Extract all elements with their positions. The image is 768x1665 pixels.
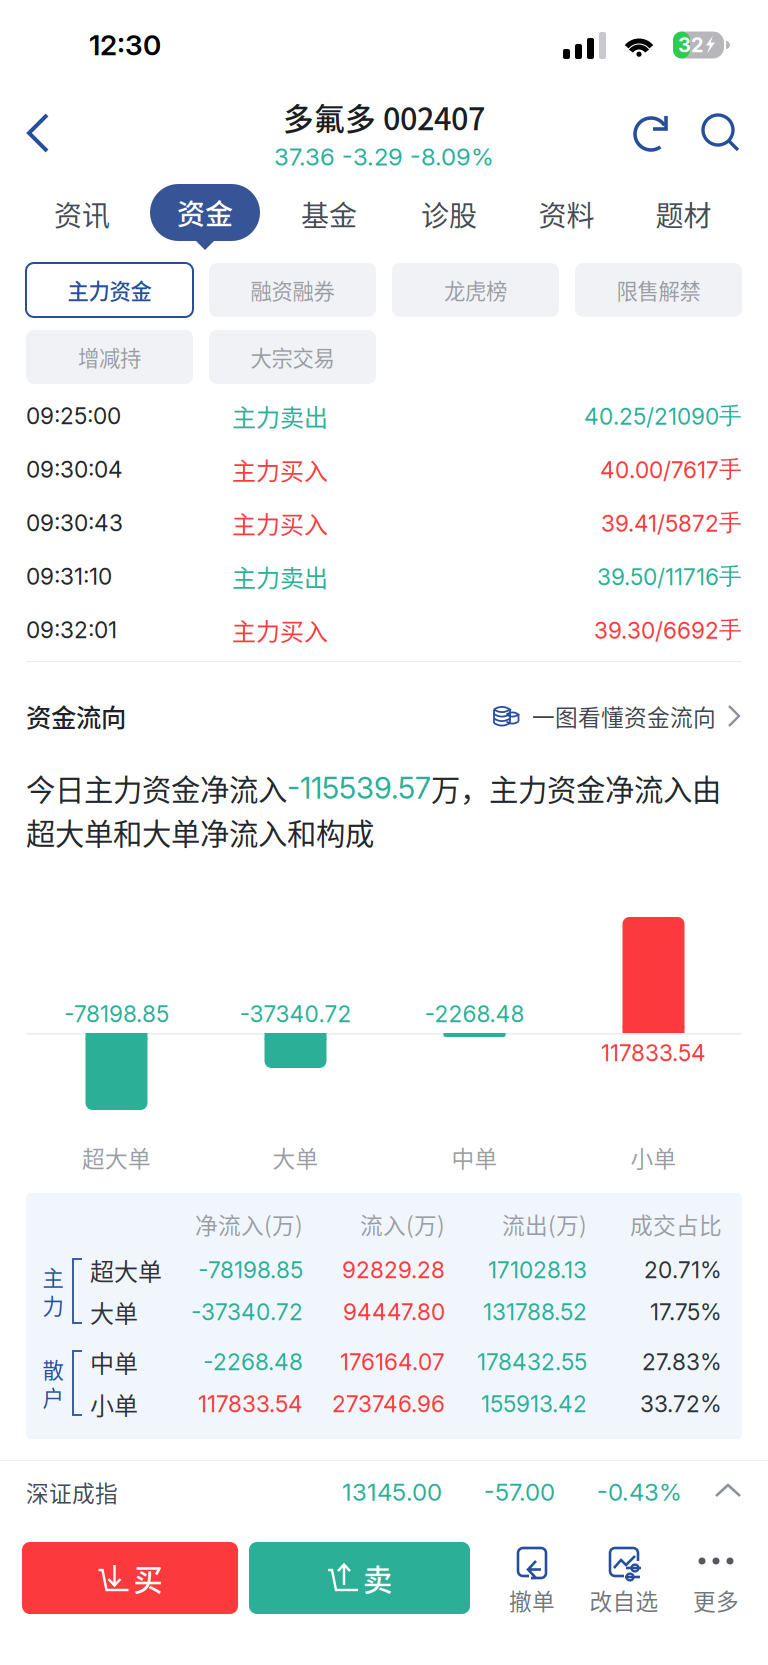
staticText: -37340.72 — [191, 1298, 303, 1326]
staticText: -0.43% — [597, 1477, 682, 1506]
staticText: 成交占比 — [630, 1208, 722, 1240]
staticText: 09:25:00 — [26, 402, 121, 430]
button[interactable]: 主力资金 — [26, 263, 193, 317]
button[interactable]: Refresh — [620, 103, 686, 163]
button[interactable]: 基金 — [268, 176, 390, 252]
staticText: 流入(万) — [360, 1208, 445, 1240]
staticText: 33.72% — [640, 1390, 722, 1418]
staticText: 万，主力资金净流入由 — [431, 767, 721, 809]
staticText: 资金流向 — [26, 698, 126, 734]
staticText: 题材 — [655, 194, 711, 234]
staticText: 诊股 — [421, 194, 477, 234]
staticText: 深证成指 — [26, 1476, 118, 1508]
staticText: 主力卖出 — [232, 559, 328, 594]
staticText: 多氟多 002407 — [283, 95, 485, 139]
staticText: 大单 — [272, 1141, 318, 1174]
staticText: 主力买入 — [232, 506, 328, 540]
staticText: 龙虎榜 — [444, 275, 507, 305]
staticText: 39.30/6692手 — [594, 616, 742, 644]
staticText: 92829.28 — [342, 1256, 445, 1284]
staticText: 17.75% — [650, 1298, 722, 1326]
staticText: -37340.72 — [239, 1000, 351, 1028]
button[interactable]: 资讯 — [22, 176, 142, 252]
staticText: 资金 — [177, 192, 233, 233]
button[interactable]: 融资融券 — [209, 263, 376, 317]
staticText: 卖 — [363, 1557, 392, 1599]
staticText: 基金 — [301, 194, 357, 234]
staticText: -57.00 — [484, 1477, 555, 1506]
staticText: 大宗交易 — [250, 342, 334, 372]
staticText: 买 — [133, 1557, 162, 1599]
staticText: 09:31:10 — [26, 563, 112, 590]
staticText: 131788.52 — [483, 1298, 587, 1326]
staticText: 27.83% — [642, 1348, 722, 1376]
button[interactable]: 限售解禁 — [575, 263, 742, 317]
staticText: 增减持 — [78, 342, 141, 372]
button[interactable]: 卖 — [249, 1542, 470, 1614]
button[interactable]: Search — [686, 103, 756, 163]
staticText: -115539.57 — [287, 770, 431, 806]
staticText: 流出(万) — [502, 1208, 587, 1240]
staticText: 117833.54 — [601, 1039, 706, 1067]
staticText: 39.41/5872手 — [601, 509, 742, 537]
staticText: 中单 — [90, 1345, 138, 1379]
staticText: 净流入(万) — [195, 1208, 303, 1240]
staticText: 273746.96 — [332, 1390, 445, 1418]
staticText: 117833.54 — [198, 1390, 303, 1418]
staticText: 限售解禁 — [616, 275, 700, 305]
button[interactable]: 更多 — [670, 1539, 762, 1617]
button[interactable]: 龙虎榜 — [392, 263, 559, 317]
staticText: 户 — [42, 1381, 63, 1412]
staticText: 40.25/21090手 — [584, 402, 742, 430]
staticText: 小单 — [90, 1387, 138, 1421]
staticText: 12:30 — [89, 28, 161, 62]
staticText: 主 — [42, 1262, 63, 1292]
staticText: -78198.85 — [198, 1256, 303, 1284]
button[interactable]: Back — [0, 99, 76, 167]
staticText: 超大单 — [90, 1253, 162, 1287]
button[interactable]: 题材 — [625, 176, 742, 252]
staticText: 39.50/11716手 — [597, 562, 742, 591]
button[interactable]: 撤单 — [486, 1539, 578, 1617]
staticText: 主力资金 — [67, 275, 151, 305]
staticText: 主力买入 — [232, 613, 328, 647]
staticText: 13145.00 — [342, 1477, 442, 1506]
button[interactable]: 大宗交易 — [209, 330, 376, 384]
staticText: 09:32:01 — [26, 616, 117, 644]
button[interactable]: 诊股 — [390, 176, 508, 252]
button[interactable]: 资金 — [142, 176, 268, 252]
staticText: 中单 — [451, 1141, 497, 1174]
staticText: 主力卖出 — [232, 399, 328, 433]
staticText: 171028.13 — [488, 1256, 587, 1284]
staticText: -78198.85 — [64, 1000, 169, 1028]
staticText: 今日主力资金净流入 — [26, 767, 287, 809]
button[interactable]: 一图看懂资金流向 — [490, 692, 742, 740]
staticText: 09:30:43 — [26, 509, 123, 537]
staticText: 超大单和大单净流入和构成 — [26, 811, 374, 853]
button[interactable]: 资料 — [508, 176, 625, 252]
staticText: 37.36 -3.29 -8.09% — [274, 142, 494, 171]
staticText: 资料 — [538, 194, 594, 234]
staticText: 更多 — [693, 1584, 739, 1616]
staticText: 20.71% — [644, 1256, 722, 1284]
staticText: 超大单 — [82, 1141, 151, 1174]
staticText: 176164.07 — [340, 1348, 445, 1376]
staticText: 一图看懂资金流向 — [532, 700, 716, 732]
staticText: 资讯 — [54, 194, 110, 234]
staticText: 155913.42 — [481, 1390, 587, 1418]
staticText: 主力买入 — [232, 452, 328, 487]
staticText: 改自选 — [589, 1584, 658, 1616]
staticText: 178432.55 — [477, 1348, 587, 1376]
staticText: 撤单 — [509, 1584, 555, 1616]
staticText: 09:30:04 — [26, 456, 123, 483]
staticText: 大单 — [90, 1295, 138, 1329]
button[interactable]: 改自选 — [578, 1539, 670, 1617]
staticText: 散 — [42, 1354, 63, 1384]
staticText: 力 — [42, 1289, 63, 1320]
button[interactable]: 增减持 — [26, 330, 193, 384]
button[interactable]: 买 — [22, 1542, 238, 1614]
staticText: 94447.80 — [343, 1298, 445, 1326]
staticText: 40.00/7617手 — [600, 455, 742, 484]
button[interactable]: 深证成指 — [0, 1461, 768, 1523]
staticText: -2268.48 — [203, 1348, 303, 1376]
